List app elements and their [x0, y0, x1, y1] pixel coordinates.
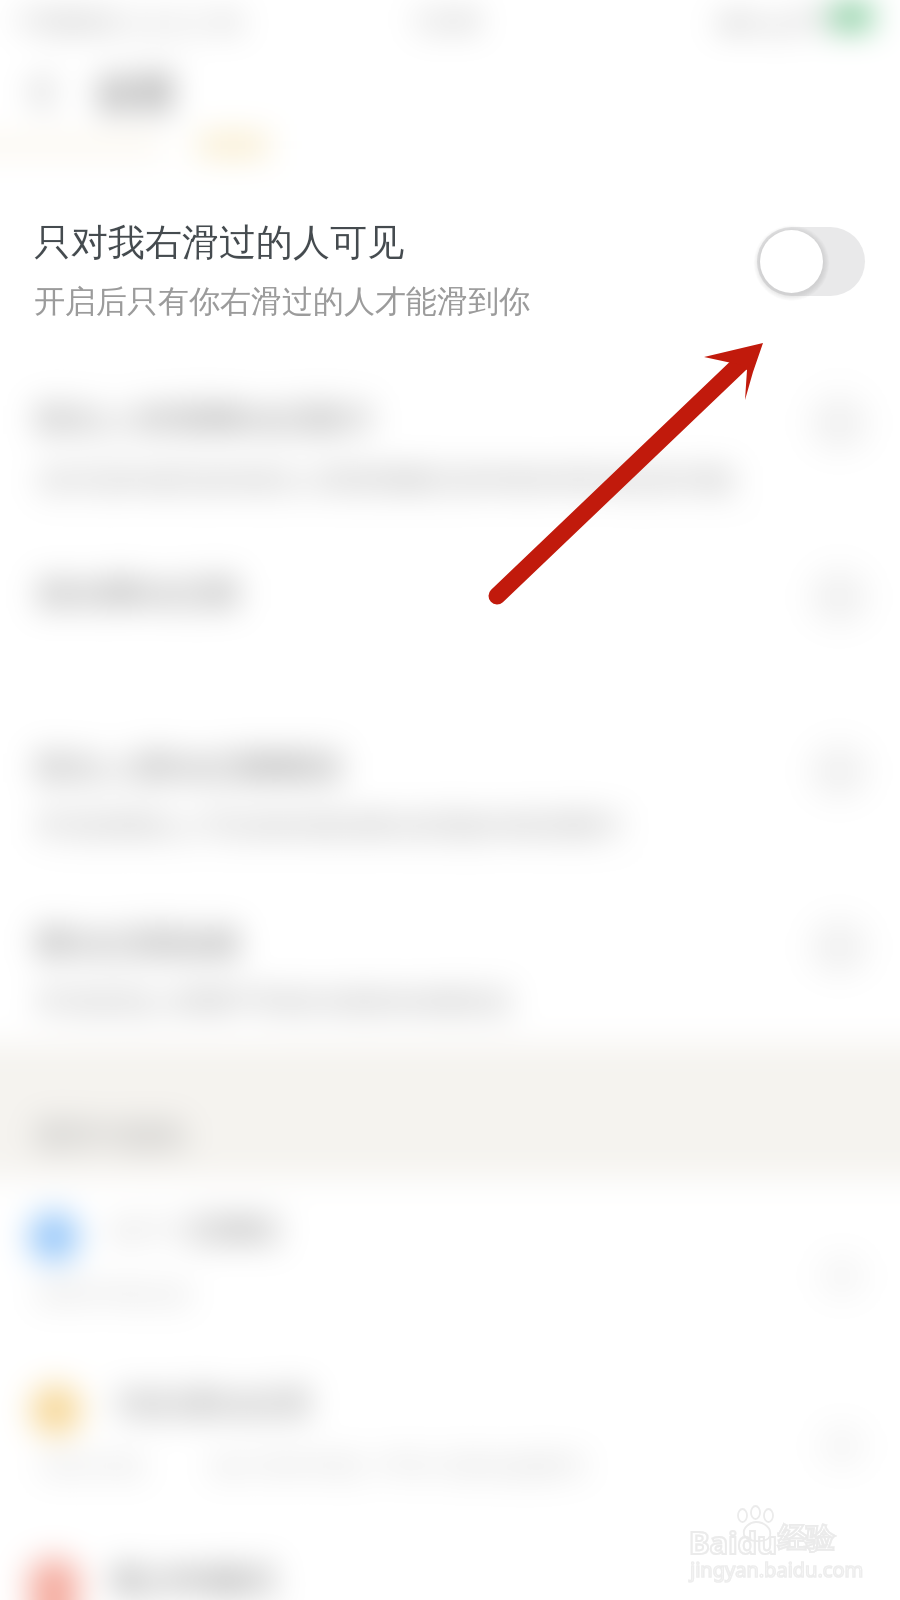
button[interactable] [0, 1530, 900, 1600]
staticText: Baidu [689, 1521, 778, 1563]
button[interactable]: 只对我右滑过的人可见 [0, 170, 900, 350]
button[interactable] [0, 356, 900, 522]
staticText: 陌生人图动态圈圈国 [36, 746, 342, 789]
staticText: ▰▰ ☁ 87% [718, 3, 844, 37]
staticText: jingyan.baidu.com [690, 1556, 864, 1583]
staticText: 消息通知设置 [114, 1383, 312, 1425]
button[interactable] [0, 694, 900, 860]
staticText: 开启后只有你右滑过的人才能滑到你 [34, 282, 530, 321]
staticText: 青少年模式 [111, 1560, 276, 1600]
staticText: 通用与隐私 [34, 1116, 189, 1155]
staticText: 经验 [778, 1521, 834, 1556]
button[interactable]: Toggle visibility [757, 227, 865, 296]
button[interactable] [0, 870, 900, 1036]
staticText: 中国移动 □□□ 4G [18, 3, 244, 39]
staticText: 朋友圈动态图 [36, 572, 240, 615]
staticText: 允许还未成为好友的人浏览我最近发布的内容动态及消息 [36, 462, 736, 497]
staticText: 陌生人查看圈动态图片 [36, 398, 376, 441]
button[interactable] [0, 1180, 900, 1350]
staticText: 已绑定 [190, 1210, 283, 1249]
staticText: 设置 [96, 68, 176, 118]
button[interactable] [0, 1352, 900, 1528]
staticText: 只对我右滑过的人可见 [34, 219, 404, 266]
staticText: 账号与安全 [112, 1212, 262, 1250]
button[interactable] [0, 522, 900, 688]
staticText: 圈动态图隐藏 [36, 922, 240, 965]
